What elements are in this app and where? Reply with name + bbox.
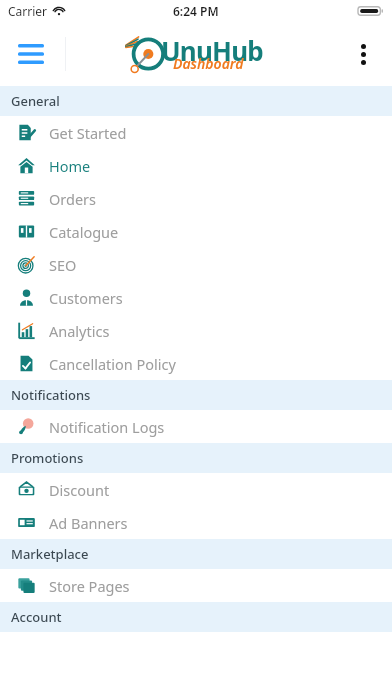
button[interactable]: Catalogue: [0, 215, 392, 248]
button[interactable]: Get Started: [0, 116, 392, 149]
staticText: Dashboard: [173, 54, 244, 73]
staticText: Promotions: [11, 449, 84, 467]
staticText: UnuHub: [161, 33, 263, 68]
staticText: Get Started: [49, 123, 127, 143]
button[interactable]: Analytics: [0, 314, 392, 347]
staticText: Analytics: [49, 321, 110, 341]
staticText: Carrier: [8, 3, 48, 19]
staticText: 6:24 PM: [173, 3, 219, 19]
button[interactable]: SEO: [0, 248, 392, 281]
button[interactable]: Open navigation menu: [9, 32, 53, 76]
staticText: Catalogue: [49, 222, 119, 242]
staticText: Store Pages: [49, 576, 130, 596]
staticText: Account: [11, 608, 62, 626]
staticText: Marketplace: [11, 545, 89, 563]
staticText: Cancellation Policy: [49, 354, 176, 374]
button[interactable]: Cancellation Policy: [0, 347, 392, 380]
button[interactable]: Home: [0, 149, 392, 182]
button[interactable]: Discount: [0, 473, 392, 506]
button[interactable]: Store Pages: [0, 569, 392, 602]
button[interactable]: Ad Banners: [0, 506, 392, 539]
staticText: Orders: [49, 189, 97, 209]
button[interactable]: Orders: [0, 182, 392, 215]
staticText: General: [11, 92, 60, 110]
button[interactable]: Customers: [0, 281, 392, 314]
staticText: Customers: [49, 288, 123, 308]
button[interactable]: More options: [343, 34, 383, 74]
staticText: Ad Banners: [49, 513, 128, 533]
staticText: Notifications: [11, 386, 91, 404]
staticText: Notification Logs: [49, 417, 165, 437]
button[interactable]: Notification Logs: [0, 410, 392, 443]
staticText: Discount: [49, 480, 110, 500]
staticText: Home: [49, 156, 91, 176]
staticText: SEO: [49, 255, 77, 275]
